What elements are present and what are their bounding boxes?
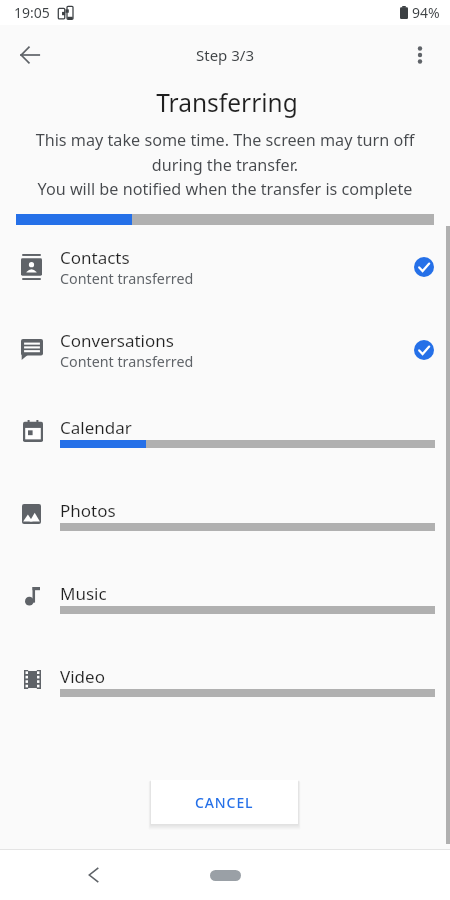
button[interactable]: Music [0,559,450,642]
staticText: Step 3/3 [196,45,254,65]
staticText: Conversations [60,329,174,352]
staticText: Video [60,665,105,688]
button[interactable]: Navigate up [12,37,48,73]
staticText: Calendar [60,416,132,439]
staticText: Contacts [60,246,130,269]
button[interactable]: Video [0,642,450,725]
staticText: 19:05 [14,3,50,22]
staticText: Content transferred [60,269,194,288]
staticText: Music [60,582,107,605]
staticText: Transferring [2,86,450,119]
button[interactable]: Photos [0,476,450,559]
button[interactable]: Back [75,857,111,893]
staticText: CANCEL [195,793,254,812]
staticText: This may take some time. The screen may … [20,129,430,200]
button[interactable]: Home [195,861,255,889]
button[interactable]: Calendar [0,393,450,476]
staticText: 94% [412,3,440,22]
button[interactable]: CANCEL [151,780,298,824]
button[interactable]: More options [402,37,438,73]
button[interactable]: Contacts [0,227,450,310]
staticText: Content transferred [60,352,194,371]
staticText: Photos [60,499,116,522]
button[interactable]: Conversations [0,310,450,393]
